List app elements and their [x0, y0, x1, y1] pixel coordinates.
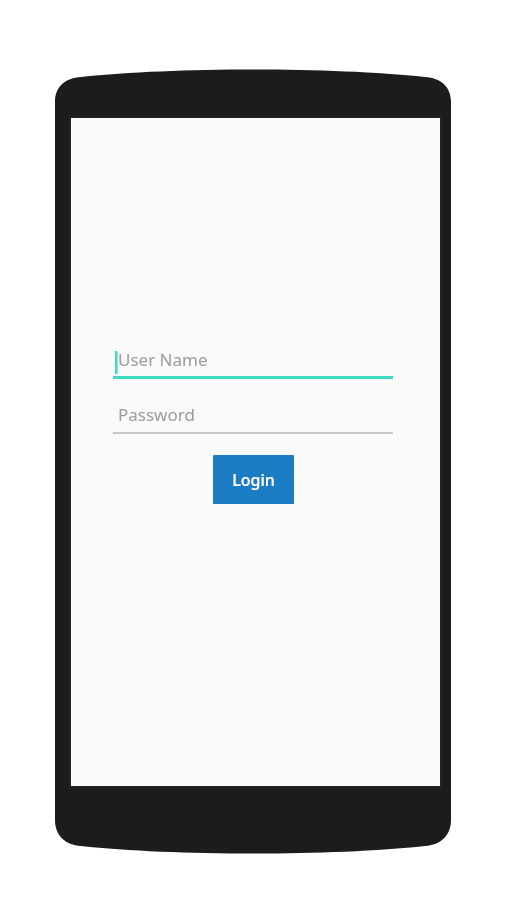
button[interactable]: User Name — [113, 342, 393, 379]
staticText: Login — [232, 469, 275, 491]
button[interactable]: Login — [213, 455, 294, 504]
staticText: Password — [118, 403, 195, 426]
staticText: User Name — [118, 348, 208, 371]
button[interactable]: Password — [113, 398, 393, 434]
